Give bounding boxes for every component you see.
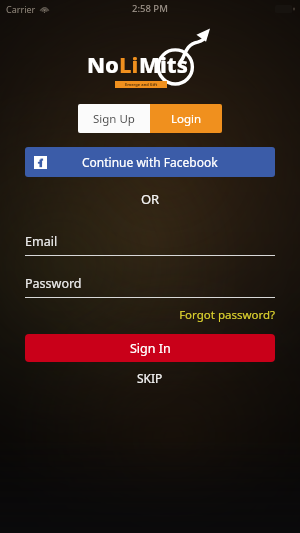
- staticText: Carrier: [6, 3, 36, 15]
- staticText: Login: [171, 111, 202, 127]
- staticText: Li: [119, 49, 139, 79]
- staticText: Password: [25, 275, 82, 292]
- staticText: Sign Up: [93, 111, 135, 127]
- button[interactable]: Password: [25, 275, 275, 298]
- staticText: No: [87, 49, 119, 79]
- staticText: Sign In: [130, 340, 171, 357]
- staticText: OR: [0, 190, 300, 208]
- button[interactable]: Sign Up: [78, 104, 150, 133]
- button[interactable]: Login: [150, 104, 222, 133]
- button[interactable]: Continue with Facebook: [25, 147, 275, 177]
- button[interactable]: Forgot password?: [0, 307, 300, 323]
- staticText: SKIP: [137, 370, 163, 386]
- button[interactable]: Email: [25, 233, 275, 256]
- button[interactable]: SKIP: [0, 370, 300, 386]
- staticText: 2:58 PM: [132, 2, 168, 15]
- staticText: Mits: [139, 49, 188, 79]
- staticText: Continue with Facebook: [82, 154, 218, 170]
- staticText: Emerge and Gift: [125, 82, 158, 87]
- staticText: Email: [25, 233, 58, 250]
- button[interactable]: Sign In: [25, 334, 275, 362]
